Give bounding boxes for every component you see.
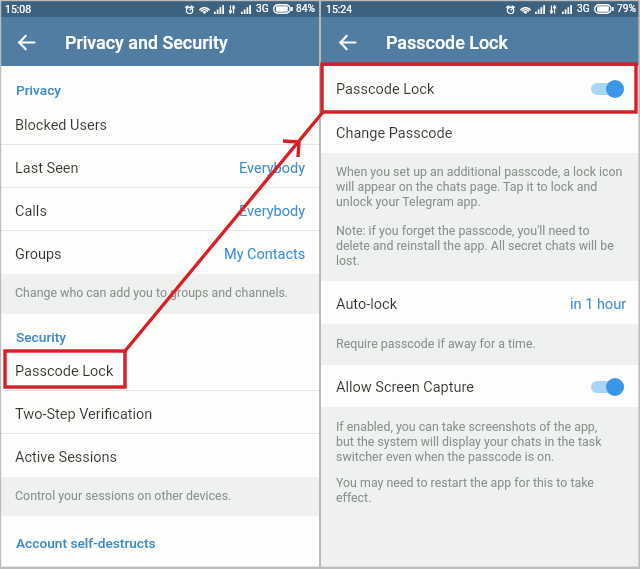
staticText: Account self-destructs <box>16 535 156 551</box>
staticText: Passcode Lock <box>386 32 508 53</box>
staticText: If away for <box>15 565 83 569</box>
staticText: Note: if you forget the passcode, you'll… <box>336 223 614 268</box>
staticText: 15:08 <box>5 3 32 15</box>
staticText: Everybody <box>239 203 306 220</box>
staticText: 15:24 <box>326 3 353 15</box>
staticText: Allow Screen Capture <box>336 379 474 396</box>
button[interactable]: Passcode Lock <box>321 66 640 110</box>
button[interactable]: Change Passcode <box>321 111 640 153</box>
button[interactable]: Blocked Users <box>0 102 319 145</box>
staticText: Passcode Lock <box>336 81 435 98</box>
staticText: Blocked Users <box>15 117 108 134</box>
button[interactable]: Last Seen <box>0 145 319 188</box>
staticText: Groups <box>15 246 62 263</box>
staticText: Passcode Lock <box>15 363 114 380</box>
staticText: 79% <box>617 3 636 15</box>
button[interactable]: Back <box>8 24 44 60</box>
staticText: 3G <box>577 3 590 15</box>
staticText: Change who can add you to groups and cha… <box>15 285 289 300</box>
button[interactable]: Groups <box>0 231 319 274</box>
button[interactable]: Auto-lock <box>321 281 640 324</box>
staticText: Two-Step Verification <box>15 406 153 423</box>
staticText: Last Seen <box>15 160 79 177</box>
staticText: Privacy <box>16 82 61 98</box>
staticText: Privacy and Security <box>65 32 228 53</box>
button[interactable]: Passcode Lock <box>0 348 319 391</box>
staticText: 84% <box>296 3 315 15</box>
staticText: Active Sessions <box>15 449 118 466</box>
staticText: Require passcode if away for a time. <box>336 336 536 351</box>
button[interactable]: Active Sessions <box>0 434 319 477</box>
staticText: Calls <box>15 203 47 220</box>
staticText: Security <box>16 329 66 345</box>
staticText: If enabled, you can take screenshots of … <box>336 419 602 464</box>
staticText: You may need to restart the app for this… <box>336 475 594 505</box>
button[interactable]: Allow Screen Capture <box>321 365 640 407</box>
staticText: Everybody <box>239 160 306 177</box>
staticText: Control your sessions on other devices. <box>15 488 232 503</box>
button[interactable]: Back <box>329 24 365 60</box>
button[interactable]: Two-Step Verification <box>0 391 319 434</box>
staticText: When you set up an additional passcode, … <box>336 164 623 209</box>
button[interactable]: Calls <box>0 188 319 231</box>
staticText: in 1 hour <box>570 296 627 313</box>
staticText: Change Passcode <box>336 125 453 142</box>
staticText: My Contacts <box>224 246 306 263</box>
staticText: Auto-lock <box>336 296 397 313</box>
staticText: 3G <box>256 3 269 15</box>
staticText: 1 month <box>252 565 306 569</box>
button[interactable]: If away for <box>0 562 319 569</box>
